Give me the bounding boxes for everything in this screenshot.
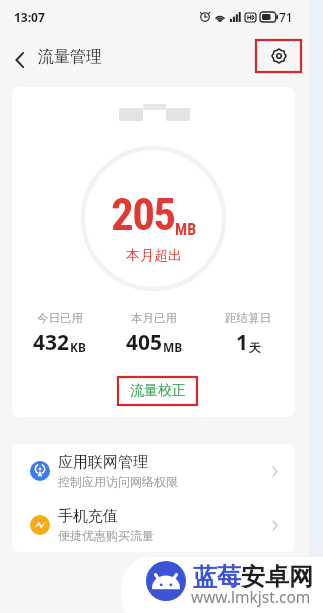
staticText: 流量管理: [38, 47, 102, 67]
staticText: www.lmkjst.com: [191, 586, 311, 607]
staticText: 本月已用: [131, 311, 177, 325]
button[interactable]: 流量校正: [118, 377, 197, 405]
staticText: 距结算日: [225, 311, 271, 325]
staticText: 205: [111, 188, 175, 241]
staticText: 控制应用访问网络权限: [58, 474, 178, 489]
staticText: MB: [163, 339, 183, 355]
staticText: 1: [236, 328, 249, 357]
staticText: 安卓网: [241, 562, 313, 592]
staticText: 13:07: [14, 9, 45, 25]
staticText: 405: [126, 328, 163, 357]
button[interactable]: Settings: [256, 40, 301, 72]
staticText: 本月超出: [126, 247, 182, 265]
staticText: MB: [175, 220, 197, 239]
staticText: 便捷优惠购买流量: [58, 528, 154, 543]
staticText: 71: [279, 9, 293, 25]
staticText: 流量校正: [130, 382, 186, 400]
staticText: 今日已用: [37, 311, 83, 325]
staticText: 蓝莓: [193, 562, 241, 592]
staticText: 手机充值: [58, 507, 118, 526]
staticText: 天: [249, 340, 261, 355]
staticText: 应用联网管理: [58, 453, 148, 472]
button[interactable]: Back: [4, 44, 36, 76]
staticText: 432: [33, 328, 70, 357]
staticText: KB: [70, 339, 86, 355]
button[interactable]: 应用联网管理: [12, 444, 295, 498]
button[interactable]: 手机充值: [12, 498, 295, 552]
